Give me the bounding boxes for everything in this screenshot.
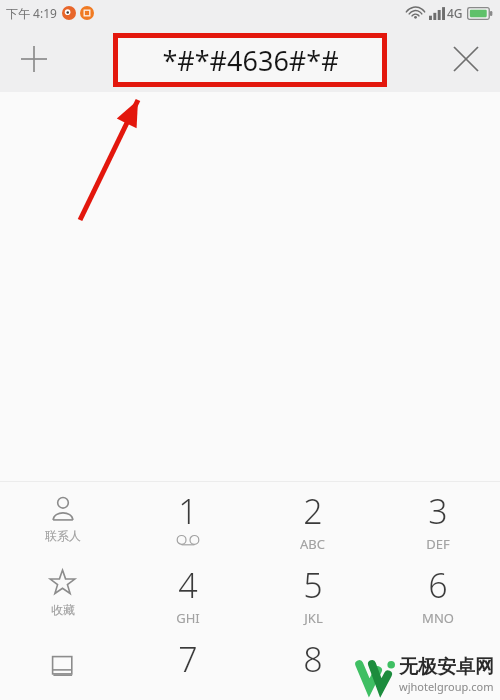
button[interactable] [375, 630, 500, 700]
staticText: 4G [447, 5, 463, 21]
button[interactable]: Contacts [0, 482, 125, 556]
button[interactable]: 7 [125, 630, 250, 700]
staticText: 7 [178, 636, 198, 682]
staticText: 1 [178, 488, 198, 534]
button[interactable]: 1 [125, 482, 250, 556]
other: Call log [51, 655, 75, 679]
staticText: 2 [303, 488, 323, 534]
staticText: ABC [300, 535, 325, 553]
button[interactable]: *#*#4636#*# [118, 38, 382, 82]
button[interactable]: 8 [250, 630, 375, 700]
staticText: 下午 4:19 [6, 5, 57, 21]
staticText: 联系人 [45, 528, 81, 543]
button[interactable]: 2 [250, 482, 375, 556]
staticText: wjhotelgroup.com [399, 679, 494, 694]
staticText: DEF [426, 535, 450, 553]
staticText: *#*#4636#*# [162, 42, 339, 79]
staticText: 无极安卓网 [399, 655, 494, 679]
button[interactable]: 6 [375, 556, 500, 630]
staticText: 6 [428, 562, 448, 608]
staticText: 5 [303, 562, 323, 608]
button[interactable]: Close [444, 37, 488, 81]
button[interactable]: 3 [375, 482, 500, 556]
staticText: 收藏 [51, 602, 75, 617]
staticText: 8 [303, 636, 323, 682]
button[interactable]: Call log [0, 630, 125, 700]
staticText: JKL [304, 609, 323, 627]
button[interactable]: Add contact [12, 37, 56, 81]
staticText: GHI [176, 609, 200, 627]
staticText: 4 [178, 562, 198, 608]
other: Favourites [49, 569, 76, 617]
button[interactable]: Favourites [0, 556, 125, 630]
other: Contacts [45, 496, 81, 543]
button[interactable]: 5 [250, 556, 375, 630]
button[interactable]: 4 [125, 556, 250, 630]
staticText: MNO [422, 609, 454, 627]
staticText: 3 [428, 488, 448, 534]
